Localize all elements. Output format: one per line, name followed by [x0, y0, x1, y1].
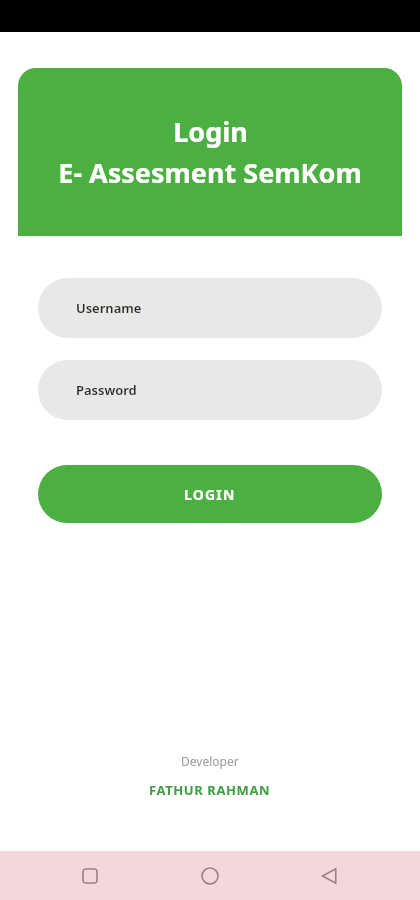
button[interactable]: LOGIN — [38, 465, 382, 523]
button[interactable]: Recent apps — [60, 851, 120, 900]
staticText: LOGIN — [184, 485, 236, 504]
staticText: Login — [173, 113, 248, 150]
button[interactable]: Password — [38, 360, 382, 420]
staticText: Developer — [181, 753, 239, 769]
staticText: Username — [76, 299, 142, 317]
button[interactable]: Back — [300, 851, 360, 900]
staticText: Password — [76, 381, 137, 399]
button[interactable]: Username — [38, 278, 382, 338]
staticText: FATHUR RAHMAN — [149, 781, 271, 799]
button[interactable]: Home — [180, 851, 240, 900]
staticText: E- Assesment SemKom — [58, 154, 362, 191]
